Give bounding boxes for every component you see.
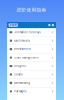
- button[interactable]: Multimedia: [7, 37, 56, 45]
- button[interactable]: Flutter: [9, 23, 18, 27]
- staticText: Networking: [14, 81, 30, 84]
- button[interactable]: Animation tutorials: [7, 28, 56, 37]
- staticText: Flutter: [10, 24, 17, 27]
- staticText: Packages: [14, 90, 26, 93]
- staticText: State Management: [14, 56, 39, 59]
- staticText: Plugins: [14, 64, 25, 68]
- button[interactable]: Persistence: [7, 45, 56, 53]
- staticText: Charts: [14, 73, 22, 76]
- button[interactable]: Search: [48, 24, 50, 26]
- button[interactable]: State Management: [7, 53, 56, 62]
- staticText: Persistence: [14, 47, 31, 51]
- button[interactable]: More: [50, 24, 54, 26]
- button[interactable]: Charts: [7, 70, 56, 79]
- staticText: Animation tutorials: [14, 31, 40, 34]
- button[interactable]: Packages: [7, 87, 56, 95]
- staticText: 进阶使用指南: [16, 7, 46, 13]
- staticText: Multimedia: [14, 39, 29, 42]
- button[interactable]: Networking: [7, 79, 56, 87]
- button[interactable]: Plugins: [7, 62, 56, 70]
